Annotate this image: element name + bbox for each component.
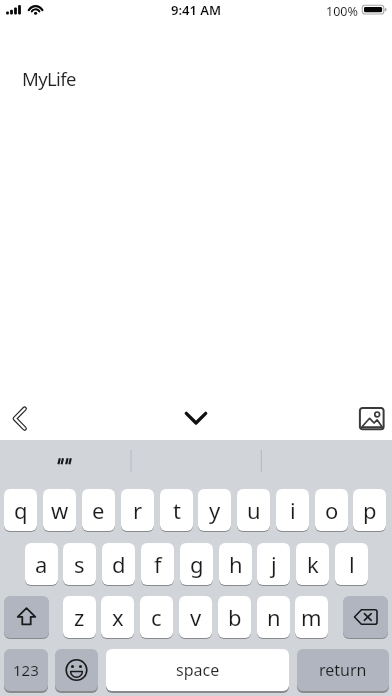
staticText: g: [190, 549, 204, 579]
button[interactable]: i: [276, 489, 309, 531]
staticText: q: [14, 495, 28, 525]
button[interactable]: s: [63, 543, 96, 585]
button[interactable]: [4, 596, 49, 638]
staticText: d: [112, 549, 126, 579]
staticText: i: [290, 495, 296, 525]
button[interactable]: g: [180, 543, 213, 585]
button[interactable]: e: [82, 489, 115, 531]
button[interactable]: [343, 596, 388, 638]
button[interactable]: 123: [4, 649, 48, 691]
staticText: b: [228, 602, 242, 632]
staticText: 123: [13, 660, 39, 680]
button[interactable]: m: [295, 596, 328, 638]
staticText: c: [151, 602, 162, 632]
button[interactable]: u: [237, 489, 270, 531]
button[interactable]: l: [335, 543, 368, 585]
button[interactable]: return: [297, 649, 389, 691]
button[interactable]: [174, 400, 218, 438]
button[interactable]: [352, 400, 388, 438]
staticText: MyLife: [22, 66, 76, 91]
button[interactable]: d: [102, 543, 135, 585]
button[interactable]: z: [63, 596, 96, 638]
button[interactable]: f: [141, 543, 174, 585]
button[interactable]: t: [160, 489, 193, 531]
staticText: e: [92, 495, 105, 525]
button[interactable]: [0, 440, 130, 486]
staticText: j: [271, 549, 277, 579]
staticText: 9:41 AM: [171, 1, 222, 19]
staticText: z: [74, 602, 85, 632]
button[interactable]: [4, 400, 40, 438]
staticText: k: [307, 549, 319, 579]
button[interactable]: b: [218, 596, 251, 638]
staticText: s: [74, 549, 85, 579]
button[interactable]: r: [121, 489, 154, 531]
button[interactable]: y: [198, 489, 231, 531]
button[interactable]: x: [101, 596, 134, 638]
staticText: t: [173, 495, 181, 525]
button[interactable]: space: [106, 649, 289, 691]
button[interactable]: [55, 649, 98, 691]
button[interactable]: w: [43, 489, 76, 531]
staticText: space: [176, 659, 220, 681]
button[interactable]: q: [4, 489, 37, 531]
button[interactable]: k: [296, 543, 329, 585]
staticText: l: [349, 549, 355, 579]
staticText: w: [51, 495, 69, 525]
staticText: m: [301, 602, 322, 632]
staticText: u: [247, 495, 261, 525]
staticText: x: [112, 602, 124, 632]
staticText: p: [363, 495, 377, 525]
staticText: a: [35, 549, 48, 579]
staticText: 100%: [326, 3, 358, 20]
button[interactable]: v: [179, 596, 212, 638]
staticText: return: [319, 659, 367, 681]
staticText: o: [325, 495, 339, 525]
button[interactable]: h: [219, 543, 252, 585]
button[interactable]: j: [257, 543, 290, 585]
staticText: n: [267, 602, 281, 632]
button[interactable]: p: [353, 489, 386, 531]
button[interactable]: a: [25, 543, 58, 585]
staticText: h: [229, 549, 243, 579]
staticText: f: [154, 549, 162, 579]
button[interactable]: n: [257, 596, 290, 638]
staticText: y: [209, 495, 221, 525]
staticText: r: [133, 495, 143, 525]
staticText: v: [190, 602, 202, 632]
button[interactable]: o: [315, 489, 348, 531]
button[interactable]: c: [140, 596, 173, 638]
